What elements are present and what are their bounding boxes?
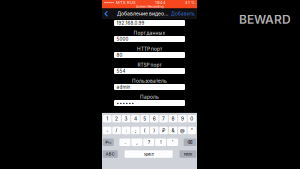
- staticText: ,: [136, 139, 137, 145]
- staticText: Пароль: [140, 94, 159, 100]
- staticText: .: [124, 139, 125, 145]
- staticText: !: [160, 139, 161, 145]
- staticText: space: [144, 152, 154, 156]
- staticText: 1: [106, 116, 108, 121]
- button[interactable]: ABC: [103, 150, 118, 158]
- staticText: 9: [181, 116, 184, 121]
- staticText: 6: [153, 116, 156, 121]
- button[interactable]: 6: [150, 115, 158, 122]
- staticText: (: [144, 127, 146, 133]
- staticText: ": [191, 127, 193, 133]
- button[interactable]: @: [178, 127, 187, 134]
- staticText: Next: [184, 152, 192, 156]
- staticText: @: [180, 127, 185, 133]
- staticText: BEWARD: [239, 12, 291, 26]
- staticText: 19:44: [155, 0, 166, 5]
- staticText: ABC: [106, 152, 115, 156]
- staticText: 2: [115, 116, 118, 121]
- staticText: 80: [116, 52, 122, 58]
- button[interactable]: /: [112, 127, 121, 134]
- staticText: 8: [171, 116, 174, 121]
- staticText: Добавить: [171, 11, 195, 16]
- staticText: Порт данных: [133, 30, 165, 36]
- button[interactable]: ': [167, 138, 178, 146]
- button[interactable]: Добавить: [171, 8, 197, 19]
- button[interactable]: &: [169, 127, 177, 134]
- staticText: ': [172, 139, 173, 145]
- button[interactable]: (: [141, 127, 149, 134]
- button[interactable]: 9: [178, 115, 187, 122]
- button[interactable]: ,: [131, 138, 142, 146]
- staticText: 5000: [116, 36, 128, 42]
- staticText: &: [171, 127, 174, 133]
- button[interactable]: ): [150, 127, 158, 134]
- staticText: ;: [135, 127, 136, 133]
- staticText: -: [106, 127, 108, 133]
- staticText: /: [116, 127, 118, 133]
- staticText: admin: [116, 84, 130, 90]
- staticText: 3: [124, 116, 127, 121]
- staticText: 41 %: [185, 0, 195, 5]
- button[interactable]: space: [125, 150, 173, 158]
- staticText: 5: [143, 116, 146, 121]
- button[interactable]: ": [188, 127, 196, 134]
- button[interactable]: 0: [188, 115, 196, 122]
- staticText: 192.168.0.99: [116, 20, 144, 26]
- staticText: 0: [190, 116, 193, 121]
- button[interactable]: Next: [180, 150, 196, 158]
- staticText: ₽: [162, 127, 165, 133]
- button[interactable]: ?: [143, 138, 154, 146]
- button[interactable]: :: [122, 127, 130, 134]
- button[interactable]: 8: [169, 115, 177, 122]
- staticText: 554: [116, 68, 125, 74]
- staticText: Screen Recording: [135, 4, 163, 9]
- button[interactable]: ⌫: [184, 138, 196, 146]
- staticText: Пользователь: [132, 78, 167, 84]
- staticText: ): [153, 127, 155, 133]
- button[interactable]: Back: [102, 8, 111, 19]
- staticText: ⌫: [187, 139, 193, 145]
- staticText: #+=: [105, 140, 111, 144]
- button[interactable]: 4: [131, 115, 140, 122]
- button[interactable]: 2: [112, 115, 121, 122]
- button[interactable]: 3: [122, 115, 130, 122]
- button[interactable]: .: [119, 138, 130, 146]
- button[interactable]: !: [155, 138, 166, 146]
- staticText: HTTP порт: [137, 46, 162, 52]
- staticText: Добавление видеодом…: [117, 11, 169, 17]
- staticText: ••••••: [116, 100, 134, 106]
- button[interactable]: #+=: [103, 138, 114, 146]
- staticText: 7: [162, 116, 165, 121]
- button[interactable]: -: [103, 127, 111, 134]
- staticText: ?: [148, 139, 150, 145]
- button[interactable]: ;: [131, 127, 140, 134]
- button[interactable]: 5: [141, 115, 149, 122]
- button[interactable]: 1: [103, 115, 111, 122]
- button[interactable]: 7: [159, 115, 168, 122]
- staticText: RTSP порт: [137, 62, 161, 68]
- staticText: ••••• MTS RUS: [104, 0, 136, 5]
- staticText: 4: [134, 116, 137, 121]
- button[interactable]: ₽: [159, 127, 168, 134]
